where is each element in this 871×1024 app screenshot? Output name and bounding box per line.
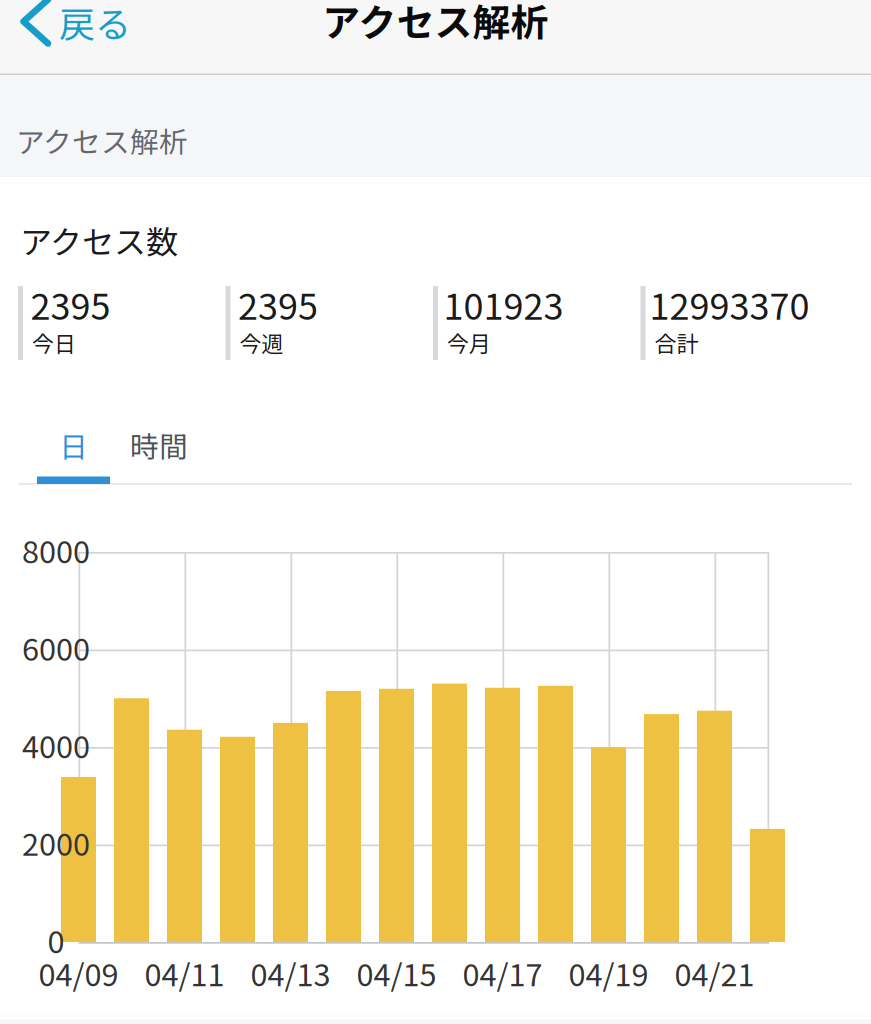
staticText: 合計 (654, 326, 698, 358)
staticText: 04/17 (462, 951, 542, 995)
staticText: アクセス解析 (322, 0, 548, 47)
staticText: 101923 (443, 278, 563, 330)
staticText: 4000 (22, 723, 90, 767)
staticText: 04/13 (250, 951, 330, 995)
staticText: 日 (59, 424, 88, 466)
staticText: 8000 (22, 528, 90, 572)
staticText: 04/21 (674, 951, 754, 995)
staticText: 今日 (32, 326, 76, 358)
staticText: 04/11 (144, 951, 224, 995)
staticText: 今週 (239, 326, 283, 358)
staticText: 2000 (22, 820, 90, 865)
staticText: 0 (47, 918, 64, 962)
staticText: アクセス数 (20, 217, 178, 263)
staticText: 04/09 (38, 951, 118, 995)
staticText: 今月 (447, 326, 491, 358)
staticText: 12993370 (649, 278, 809, 330)
staticText: アクセス解析 (16, 119, 188, 161)
staticText: 時間 (130, 424, 188, 466)
staticText: 2395 (30, 278, 110, 330)
staticText: 6000 (22, 625, 90, 670)
staticText: 04/19 (568, 951, 648, 995)
staticText: 戻る (59, 0, 131, 48)
staticText: 2395 (238, 278, 318, 330)
button[interactable]: 時間 (117, 417, 201, 473)
button[interactable]: 日 (37, 417, 111, 473)
staticText: 04/15 (356, 951, 436, 995)
button[interactable]: 戻る (0, 0, 140, 62)
